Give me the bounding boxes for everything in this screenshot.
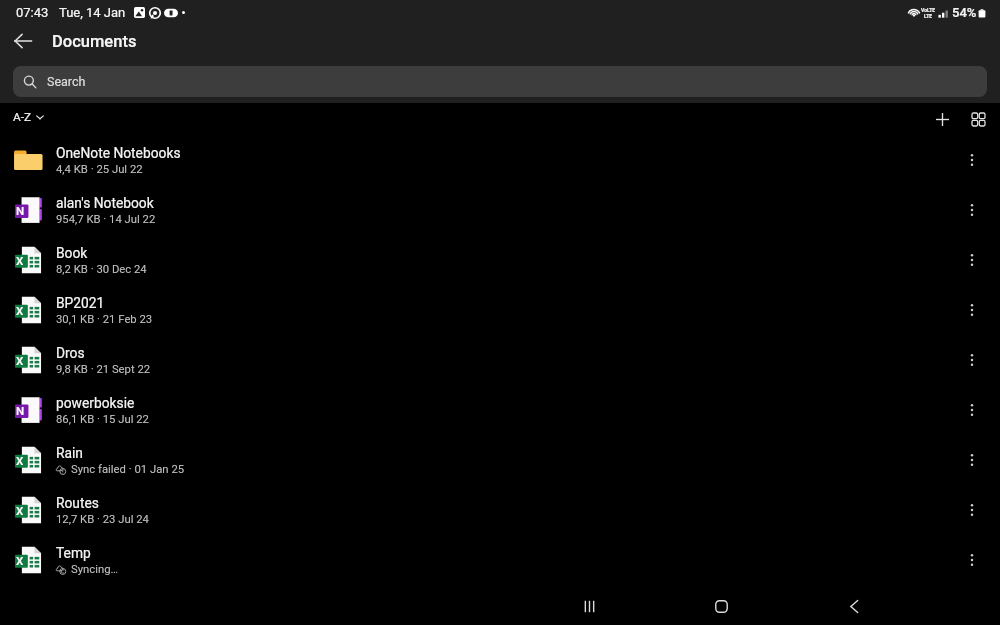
button[interactable]: N	[0, 185, 1000, 235]
staticText: 07:43	[16, 5, 49, 20]
staticText: N	[16, 404, 25, 417]
button[interactable]: X	[0, 285, 1000, 335]
staticText: 30,1 KB · 21 Feb 23	[56, 313, 153, 326]
button[interactable]: Search	[13, 66, 987, 97]
staticText: OneNote Notebooks	[56, 145, 181, 161]
staticText: Rain	[56, 445, 83, 461]
staticText: A-Z	[13, 110, 32, 124]
button[interactable]: More options	[950, 238, 994, 282]
staticText: 12,7 KB · 23 Jul 24	[56, 513, 149, 526]
staticText: Temp	[56, 545, 91, 561]
staticText: Search	[47, 74, 86, 89]
button[interactable]: Back	[833, 585, 873, 625]
staticText: 8,2 KB · 30 Dec 24	[56, 263, 147, 276]
staticText: 9,8 KB · 21 Sept 22	[56, 363, 151, 376]
button[interactable]: X	[0, 435, 1000, 485]
staticText: LTE	[924, 13, 933, 19]
button[interactable]: X	[0, 235, 1000, 285]
button[interactable]: Add	[926, 103, 958, 135]
button[interactable]: X	[0, 335, 1000, 385]
staticText: X	[16, 504, 24, 517]
staticText: X	[16, 354, 24, 367]
staticText: Syncing…	[71, 563, 119, 576]
button[interactable]: Switch to grid view	[962, 103, 994, 135]
staticText: alan's Notebook	[56, 195, 154, 211]
staticText: Documents	[52, 32, 137, 51]
staticText: BP2021	[56, 295, 105, 311]
staticText: powerboksie	[56, 395, 135, 411]
staticText: X	[16, 254, 24, 267]
button[interactable]: Recent apps	[569, 585, 609, 625]
button[interactable]: More options	[950, 388, 994, 432]
staticText: Dros	[56, 345, 85, 361]
button[interactable]: OneNote Notebooks	[0, 135, 1000, 185]
staticText: X	[16, 454, 24, 467]
staticText: N	[16, 204, 25, 217]
button[interactable]: More options	[950, 188, 994, 232]
staticText: Tue, 14 Jan	[59, 5, 126, 20]
button[interactable]: More options	[950, 438, 994, 482]
button[interactable]: X	[0, 485, 1000, 535]
button[interactable]: N	[0, 385, 1000, 435]
staticText: Routes	[56, 495, 99, 511]
button[interactable]: A-Z	[9, 106, 48, 128]
button[interactable]: Home	[701, 585, 741, 625]
button[interactable]: More options	[950, 538, 994, 582]
staticText: VoLTE	[921, 7, 936, 13]
staticText: 4,4 KB · 25 Jul 22	[56, 163, 143, 176]
button[interactable]: More options	[950, 338, 994, 382]
staticText: X	[16, 554, 24, 567]
staticText: Book	[56, 245, 88, 261]
button[interactable]: More options	[950, 488, 994, 532]
button[interactable]: Back	[7, 25, 39, 57]
staticText: Sync failed · 01 Jan 25	[71, 463, 185, 476]
staticText: 54%	[952, 5, 977, 20]
button[interactable]: More options	[950, 138, 994, 182]
button[interactable]: More options	[950, 288, 994, 332]
staticText: 86,1 KB · 15 Jul 22	[56, 413, 149, 426]
staticText: 954,7 KB · 14 Jul 22	[56, 213, 156, 226]
button[interactable]: X	[0, 535, 1000, 585]
staticText: X	[16, 304, 24, 317]
